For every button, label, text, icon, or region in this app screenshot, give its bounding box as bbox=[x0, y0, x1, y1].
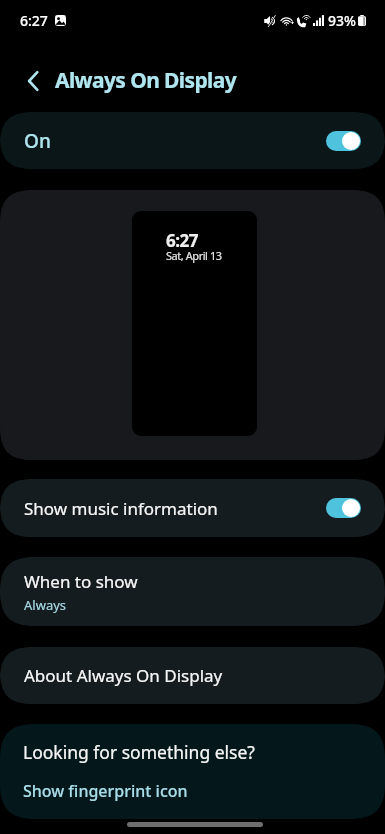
button[interactable]: When to show bbox=[0, 557, 385, 626]
button[interactable]: About Always On Display bbox=[0, 647, 385, 704]
staticText: Always bbox=[24, 596, 67, 614]
button[interactable]: Toggle bbox=[326, 498, 361, 518]
staticText: Always On Display bbox=[55, 66, 237, 95]
staticText: 93% bbox=[328, 11, 356, 30]
button[interactable]: Show fingerprint icon bbox=[0, 774, 385, 808]
staticText: About Always On Display bbox=[24, 664, 223, 687]
button[interactable]: Toggle bbox=[326, 131, 361, 151]
staticText: 6:27 bbox=[166, 229, 198, 252]
staticText: Sat, April 13 bbox=[166, 248, 222, 263]
staticText: 6:27 bbox=[20, 11, 48, 30]
button[interactable]: On bbox=[0, 112, 385, 169]
staticText: Show music information bbox=[24, 497, 218, 520]
staticText: Show fingerprint icon bbox=[23, 780, 188, 802]
staticText: Looking for something else? bbox=[23, 740, 255, 764]
staticText: When to show bbox=[24, 570, 138, 593]
button[interactable]: Back bbox=[16, 64, 50, 98]
button[interactable]: Show music information bbox=[0, 479, 385, 537]
staticText: On bbox=[24, 128, 51, 154]
